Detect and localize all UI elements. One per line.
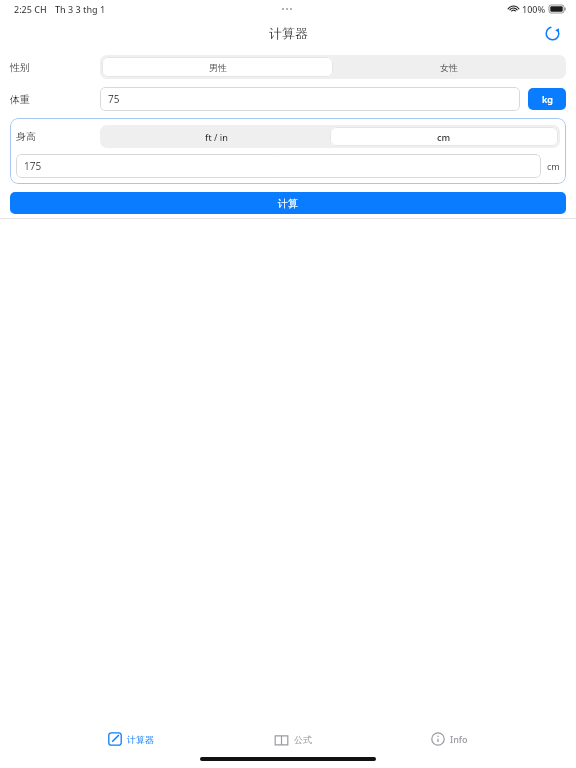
staticText: 75 (108, 92, 120, 106)
button[interactable]: 公式 (262, 729, 324, 750)
staticText: 计算 (278, 197, 298, 210)
staticText: 体重 (10, 93, 30, 106)
staticText: 2:25 CH (14, 3, 47, 15)
staticText: 100% (522, 3, 546, 15)
staticText: 计算器 (127, 734, 154, 745)
staticText: Th 3 3 thg 1 (55, 3, 106, 15)
staticText: 男性 (209, 62, 227, 73)
staticText: 计算器 (269, 25, 308, 41)
staticText: kg (542, 93, 553, 105)
button[interactable]: 女性 (333, 57, 564, 77)
staticText: 公式 (294, 734, 312, 745)
staticText: 女性 (440, 62, 458, 73)
button[interactable]: Info (419, 728, 480, 750)
button[interactable]: 175 (16, 154, 541, 178)
button[interactable]: 男性 (102, 57, 333, 77)
staticText: Info (450, 733, 468, 745)
button[interactable]: 计算 (10, 192, 566, 214)
staticText: ft / in (205, 131, 228, 143)
button[interactable]: 75 (100, 87, 520, 111)
button[interactable]: cm (330, 127, 558, 146)
staticText: 性别 (10, 61, 30, 74)
button[interactable]: kg (528, 88, 566, 110)
button[interactable]: Reset (538, 19, 566, 47)
staticText: cm (437, 131, 451, 143)
staticText: 身高 (16, 130, 36, 143)
button[interactable]: ft / in (102, 127, 330, 146)
button[interactable]: 计算器 (96, 728, 166, 750)
staticText: 175 (24, 159, 42, 173)
staticText: cm (547, 160, 560, 172)
